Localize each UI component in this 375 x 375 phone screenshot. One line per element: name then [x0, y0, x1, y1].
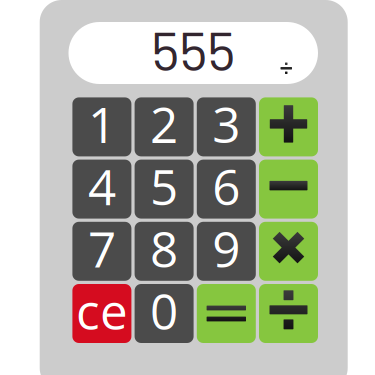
button[interactable]: 3: [197, 97, 256, 156]
staticText: 8: [150, 215, 178, 282]
button[interactable]: 2: [135, 97, 194, 156]
button[interactable]: Equals: [197, 284, 256, 343]
button[interactable]: 6: [197, 160, 256, 219]
staticText: 3: [212, 90, 240, 157]
staticText: 6: [212, 152, 240, 220]
button[interactable]: 9: [197, 222, 256, 281]
button[interactable]: 8: [135, 222, 194, 281]
button[interactable]: 4: [72, 160, 131, 219]
staticText: 0: [150, 277, 178, 344]
staticText: 9: [212, 215, 240, 282]
button[interactable]: 1: [72, 97, 131, 156]
button[interactable]: Divide: [259, 284, 318, 343]
button[interactable]: Multiply: [259, 222, 318, 281]
button[interactable]: ce: [72, 284, 131, 343]
button[interactable]: 7: [72, 222, 131, 281]
button[interactable]: Add: [259, 97, 318, 156]
staticText: ce: [76, 277, 128, 344]
staticText: 2: [150, 90, 178, 157]
button[interactable]: 5: [135, 160, 194, 219]
staticText: 5: [150, 152, 178, 220]
staticText: 4: [88, 152, 116, 220]
staticText: 1: [88, 90, 116, 157]
button[interactable]: 0: [135, 284, 194, 343]
button[interactable]: Subtract: [259, 160, 318, 219]
staticText: 555: [151, 16, 235, 82]
staticText: 7: [88, 215, 116, 282]
